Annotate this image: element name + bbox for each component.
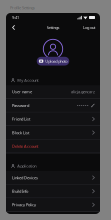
- staticText: Block List: [12, 130, 29, 135]
- button[interactable]: Linked Devices: [6, 171, 100, 185]
- button[interactable]: Friend List: [6, 112, 100, 126]
- staticText: Privacy Policy: [12, 202, 36, 207]
- button[interactable]: User name: [6, 85, 100, 99]
- staticText: alicja.gencarz: [71, 89, 95, 94]
- button[interactable]: Build Info: [6, 185, 100, 198]
- button[interactable]: Delete Account: [6, 140, 100, 153]
- staticText: Upload photo: [45, 58, 67, 64]
- button[interactable]: Password: [6, 99, 100, 112]
- staticText: Linked Devices: [12, 175, 38, 180]
- button[interactable]: Block List: [6, 126, 100, 140]
- staticText: Password: [12, 103, 29, 108]
- staticText: Settings: [46, 25, 59, 30]
- staticText: Profile Settings: [10, 5, 35, 10]
- staticText: Log out: [83, 25, 95, 30]
- staticText: Friend List: [12, 116, 30, 122]
- staticText: Build Info: [12, 188, 28, 194]
- staticText: User name: [12, 89, 32, 94]
- staticText: Application: [17, 163, 36, 168]
- staticText: My Account: [17, 77, 38, 83]
- button[interactable]: Back: [6, 22, 20, 33]
- button[interactable]: Upload photo: [37, 57, 69, 65]
- button[interactable]: Log out: [79, 22, 100, 33]
- staticText: Delete Account: [12, 143, 38, 149]
- staticText: 9:41: [12, 15, 19, 20]
- staticText: ••••••: [77, 103, 89, 108]
- button[interactable]: Privacy Policy: [6, 198, 100, 212]
